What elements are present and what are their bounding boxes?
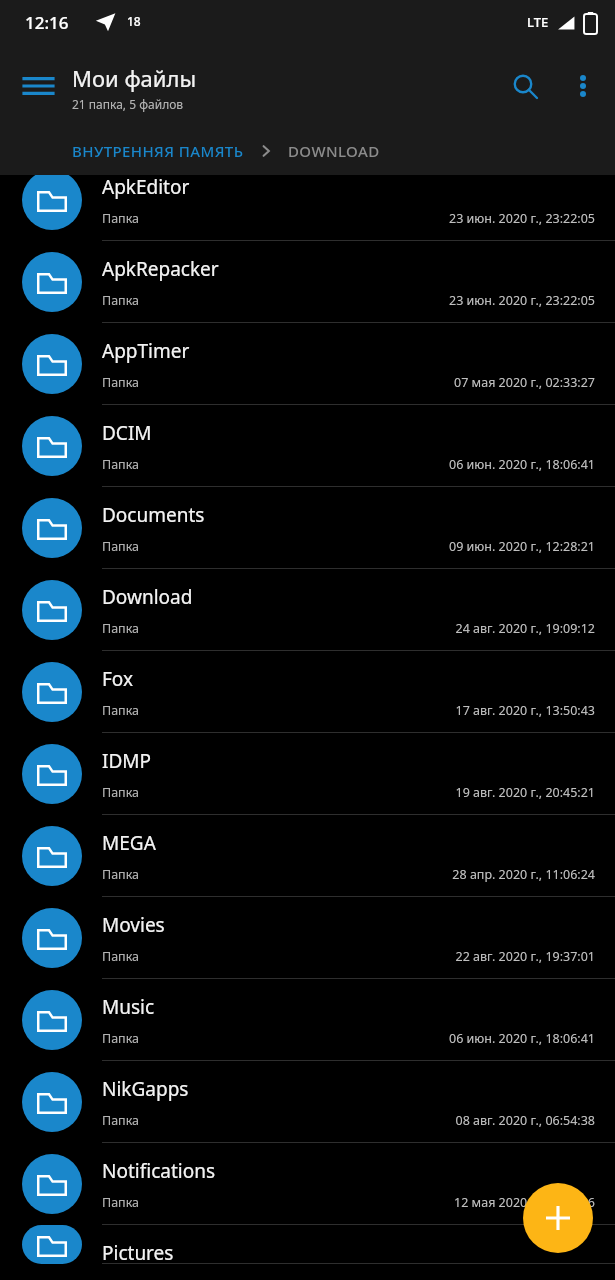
staticText: Music bbox=[102, 994, 155, 1020]
staticText: AppTimer bbox=[102, 338, 190, 364]
staticText: 07 мая 2020 г., 02:33:27 bbox=[454, 374, 595, 391]
staticText: Pictures bbox=[102, 1240, 174, 1266]
button[interactable]: DOWNLOAD bbox=[274, 135, 394, 167]
button[interactable]: Documents bbox=[0, 487, 615, 569]
button[interactable]: IDMP bbox=[0, 733, 615, 815]
staticText: Папка bbox=[102, 210, 140, 227]
button[interactable]: MEGA bbox=[0, 815, 615, 897]
staticText: IDMP bbox=[102, 748, 152, 774]
staticText: ApkEditor bbox=[102, 175, 190, 200]
staticText: Папка bbox=[102, 620, 140, 637]
button[interactable]: Pictures bbox=[0, 1225, 615, 1264]
staticText: Папка bbox=[102, 1194, 140, 1211]
staticText: 06 июн. 2020 г., 18:06:41 bbox=[449, 456, 595, 473]
button[interactable]: Fox bbox=[0, 651, 615, 733]
staticText: DOWNLOAD bbox=[288, 141, 380, 161]
staticText: Мои файлы bbox=[72, 63, 197, 93]
staticText: Папка bbox=[102, 292, 140, 309]
button[interactable]: AppTimer bbox=[0, 323, 615, 405]
staticText: Папка bbox=[102, 456, 140, 473]
button[interactable]: Notifications bbox=[0, 1143, 615, 1225]
button[interactable]: ВНУТРЕННЯЯ ПАМЯТЬ bbox=[58, 135, 258, 167]
staticText: Download bbox=[102, 584, 193, 610]
button[interactable]: Поиск bbox=[499, 60, 551, 112]
button[interactable]: NikGapps bbox=[0, 1061, 615, 1143]
button[interactable]: Создать bbox=[523, 1183, 593, 1253]
staticText: Папка bbox=[102, 948, 140, 965]
staticText: 19 авг. 2020 г., 20:45:21 bbox=[455, 784, 595, 801]
staticText: DCIM bbox=[102, 420, 152, 446]
staticText: 08 авг. 2020 г., 06:54:38 bbox=[455, 1112, 595, 1129]
staticText: 28 апр. 2020 г., 11:06:24 bbox=[452, 866, 595, 883]
button[interactable]: Movies bbox=[0, 897, 615, 979]
staticText: Fox bbox=[102, 666, 134, 692]
staticText: 18 bbox=[127, 13, 141, 29]
staticText: 24 авг. 2020 г., 19:09:12 bbox=[455, 620, 595, 637]
button[interactable]: Меню bbox=[10, 58, 66, 114]
staticText: MEGA bbox=[102, 830, 156, 856]
staticText: ApkRepacker bbox=[102, 256, 219, 282]
staticText: Папка bbox=[102, 1112, 140, 1129]
button[interactable]: Ещё bbox=[559, 62, 607, 110]
staticText: 23 июн. 2020 г., 23:22:05 bbox=[449, 292, 595, 309]
staticText: Documents bbox=[102, 502, 205, 528]
staticText: Папка bbox=[102, 538, 140, 555]
staticText: Папка bbox=[102, 866, 140, 883]
staticText: 09 июн. 2020 г., 12:28:21 bbox=[449, 538, 595, 555]
button[interactable]: ApkEditor bbox=[0, 175, 615, 241]
staticText: 21 папка, 5 файлов bbox=[72, 96, 184, 112]
button[interactable]: DCIM bbox=[0, 405, 615, 487]
staticText: 12 мая 2020 г., 10:11:06 bbox=[454, 1194, 595, 1211]
staticText: 06 июн. 2020 г., 18:06:41 bbox=[449, 1030, 595, 1047]
staticText: Папка bbox=[102, 1030, 140, 1047]
button[interactable]: Music bbox=[0, 979, 615, 1061]
staticText: Папка bbox=[102, 374, 140, 391]
staticText: Папка bbox=[102, 784, 140, 801]
staticText: 12:16 bbox=[25, 11, 69, 34]
staticText: 22 авг. 2020 г., 19:37:01 bbox=[455, 948, 595, 965]
staticText: Notifications bbox=[102, 1158, 216, 1184]
staticText: LTE bbox=[527, 13, 549, 31]
staticText: Папка bbox=[102, 702, 140, 719]
staticText: ВНУТРЕННЯЯ ПАМЯТЬ bbox=[72, 141, 244, 161]
button[interactable]: Download bbox=[0, 569, 615, 651]
staticText: Movies bbox=[102, 912, 165, 938]
staticText: 17 авг. 2020 г., 13:50:43 bbox=[455, 702, 595, 719]
button[interactable]: ApkRepacker bbox=[0, 241, 615, 323]
staticText: NikGapps bbox=[102, 1076, 189, 1102]
staticText: 23 июн. 2020 г., 23:22:05 bbox=[449, 210, 595, 227]
